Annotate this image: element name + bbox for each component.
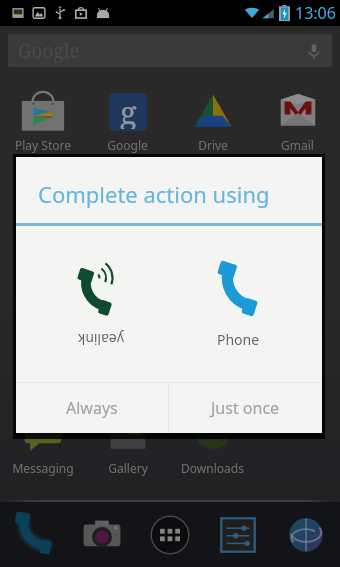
button[interactable]: Settings	[204, 502, 272, 567]
button[interactable]: Always	[16, 383, 168, 433]
button[interactable]: Messaging	[0, 411, 85, 476]
staticText: Gallery	[108, 460, 148, 476]
staticText: Complete action using	[38, 179, 270, 209]
staticText: Messaging	[12, 460, 74, 476]
button[interactable]: Google	[8, 34, 332, 67]
button[interactable]: Browser	[272, 502, 340, 567]
button[interactable]: Just once	[169, 383, 322, 433]
button[interactable]: Gmail	[255, 88, 340, 153]
button[interactable]: Phone	[169, 226, 307, 382]
staticText: g	[120, 93, 137, 129]
staticText: Downloads	[181, 460, 244, 476]
button[interactable]: g	[85, 88, 170, 153]
button[interactable]: Gallery	[85, 411, 170, 476]
staticText: Gmail	[281, 137, 314, 153]
staticText: Always	[66, 397, 118, 419]
button[interactable]: Apps	[136, 502, 204, 567]
staticText: Drive	[198, 137, 228, 153]
staticText: Play Store	[15, 137, 71, 153]
button[interactable]: Drive	[170, 88, 255, 153]
button[interactable]: Downloads	[170, 411, 255, 476]
staticText: Just once	[211, 397, 280, 419]
staticText: yealink	[77, 330, 124, 349]
button[interactable]: Play Store	[0, 88, 85, 153]
staticText: Phone	[217, 330, 260, 349]
button[interactable]: Phone	[0, 502, 68, 567]
button[interactable]: yealink	[31, 226, 169, 382]
staticText: Google	[107, 137, 148, 153]
staticText: Google	[18, 38, 80, 64]
staticText: 13:06	[295, 2, 336, 24]
button[interactable]: Camera	[68, 502, 136, 567]
